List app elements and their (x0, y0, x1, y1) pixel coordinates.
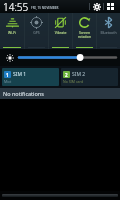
button[interactable]: Brightness slider (19, 52, 116, 63)
button[interactable]: GPS (25, 13, 48, 49)
button[interactable]: Auto brightness (4, 52, 15, 63)
staticText: 1 (6, 72, 9, 78)
staticText: No SIM card (63, 79, 84, 84)
button[interactable]: Settings (90, 0, 103, 13)
staticText: Bluetooth (97, 30, 120, 35)
button[interactable]: Wi-Fi (0, 13, 24, 49)
staticText: SIM 2 (72, 71, 86, 78)
staticText: Vibrate (49, 30, 72, 35)
staticText: No notifications (3, 90, 44, 97)
staticText: 2 (65, 72, 68, 78)
staticText: GPS (25, 30, 48, 35)
button[interactable]: Screen rotation (73, 13, 96, 49)
button[interactable]: Expand quick settings (104, 0, 117, 13)
staticText: Screen rotation (73, 30, 96, 39)
staticText: 14:55 (3, 0, 29, 13)
staticText: SIM 1 (13, 71, 27, 78)
button[interactable]: Bluetooth (97, 13, 120, 49)
button[interactable]: 1 (2, 68, 59, 86)
staticText: Mixt (4, 79, 12, 84)
button[interactable]: Vibrate (49, 13, 72, 49)
button[interactable]: 2 (61, 68, 118, 86)
staticText: Wi-Fi (0, 30, 24, 35)
staticText: FRI, 15 NOVEMBER (31, 6, 59, 10)
button[interactable]: Close shade (2, 194, 118, 197)
